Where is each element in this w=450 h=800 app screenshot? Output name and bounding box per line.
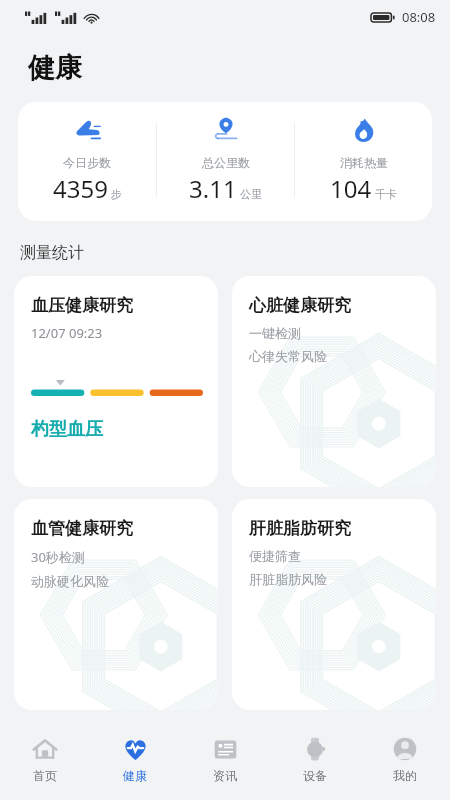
staticText: 步	[111, 187, 122, 201]
staticText: 千卡	[375, 187, 397, 201]
staticText: 血管健康研究	[31, 518, 133, 539]
staticText: 30秒检测	[31, 548, 85, 566]
other: 首页	[33, 737, 57, 761]
staticText: 动脉硬化风险	[31, 573, 109, 589]
staticText: 血压健康研究	[31, 295, 133, 316]
staticText: 消耗热量	[340, 155, 388, 170]
staticText: 3.11	[189, 172, 237, 205]
button[interactable]: 资讯	[180, 734, 270, 785]
staticText: 总公里数	[202, 155, 250, 170]
staticText: 今日步数	[63, 155, 111, 170]
other: 我的	[393, 737, 417, 761]
button[interactable]: 今日步数	[18, 102, 432, 221]
staticText: 公里	[240, 187, 262, 201]
staticText: 杓型血压	[31, 418, 103, 441]
staticText: 心律失常风险	[249, 348, 327, 364]
staticText: 肝脏脂肪研究	[249, 518, 351, 539]
button[interactable]: 肝脏脂肪研究	[232, 499, 436, 710]
staticText: 12/07 09:23	[31, 324, 103, 342]
staticText: 设备	[303, 768, 327, 783]
other: 资讯	[214, 738, 237, 761]
button[interactable]: 首页	[0, 734, 90, 785]
staticText: 104	[330, 172, 372, 205]
staticText: 测量统计	[20, 243, 84, 263]
staticText: 健康	[123, 768, 147, 783]
staticText: 08:08	[402, 8, 436, 26]
button[interactable]: 血压健康研究	[14, 276, 218, 487]
staticText: 心脏健康研究	[249, 295, 351, 316]
button[interactable]: 设备	[270, 734, 360, 785]
staticText: 一键检测	[249, 325, 301, 341]
staticText: 肝脏脂肪风险	[249, 571, 327, 587]
staticText: 健康	[28, 51, 82, 85]
staticText: 资讯	[213, 768, 237, 783]
other: 健康	[123, 737, 148, 762]
other: 设备	[303, 737, 327, 761]
staticText: 便捷筛查	[249, 548, 301, 564]
staticText: 4359	[53, 172, 108, 205]
button[interactable]: 我的	[360, 734, 450, 785]
staticText: 我的	[393, 768, 417, 783]
button[interactable]: 血管健康研究	[14, 499, 218, 710]
staticText: 首页	[33, 768, 57, 783]
button[interactable]: 心脏健康研究	[232, 276, 436, 487]
button[interactable]: 健康	[90, 734, 180, 785]
